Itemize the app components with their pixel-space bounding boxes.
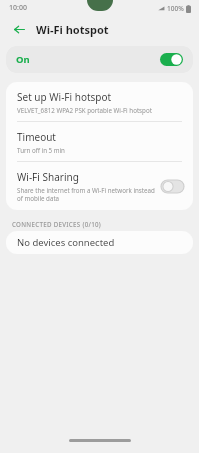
button[interactable]: Back xyxy=(10,20,28,38)
staticText: 10:00 xyxy=(9,3,27,13)
staticText: CONNECTED DEVICES (0/10) xyxy=(12,220,102,228)
staticText: Turn off in 5 min xyxy=(17,146,65,154)
button[interactable]: Set up Wi-Fi hotspot xyxy=(6,82,193,121)
button[interactable]: Timeout xyxy=(6,122,193,161)
button[interactable]: Wi-Fi Sharing toggle xyxy=(161,180,184,193)
button[interactable]: Wi-Fi Sharing xyxy=(6,162,193,210)
button[interactable]: On xyxy=(6,46,193,73)
button[interactable]: No devices connected xyxy=(6,231,193,254)
staticText: 100% xyxy=(167,4,184,13)
staticText: Timeout xyxy=(17,130,56,144)
staticText: Set up Wi-Fi hotspot xyxy=(17,90,112,104)
staticText: Share the internet from a Wi-Fi network … xyxy=(17,186,155,202)
staticText: Wi-Fi Sharing xyxy=(17,170,79,184)
staticText: No devices connected xyxy=(17,236,115,249)
staticText: VELVET_6812 WPA2 PSK portable Wi-Fi hots… xyxy=(17,106,152,114)
staticText: On xyxy=(16,53,30,66)
staticText: Wi-Fi hotspot xyxy=(36,22,109,37)
